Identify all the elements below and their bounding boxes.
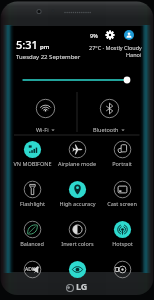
staticText: Airplane mode: [58, 160, 96, 167]
staticText: 5:31: [16, 37, 38, 52]
staticText: Flashlight: [20, 200, 45, 207]
button[interactable]: Cast screen: [100, 181, 144, 211]
staticText: 27°C · Mostly Cloudy: [89, 44, 142, 51]
button[interactable]: Portrait: [100, 141, 144, 171]
staticText: Bluetooth: [93, 126, 119, 133]
button[interactable]: Bluetooth: [77, 99, 141, 133]
button[interactable]: Quick setting: [10, 261, 54, 291]
button[interactable]: Wi-Fi: [13, 99, 77, 133]
staticText: Invert colors: [61, 240, 94, 247]
button[interactable]: Invert colors: [55, 221, 99, 251]
staticText: Hanoi: [126, 51, 142, 58]
button[interactable]: Airplane mode: [55, 141, 99, 171]
button[interactable]: Brightness: [18, 72, 136, 88]
button[interactable]: Quick setting: [100, 261, 144, 291]
button[interactable]: User profile: [124, 30, 134, 40]
staticText: High accuracy: [59, 200, 96, 207]
button[interactable]: Quick setting: [55, 261, 99, 291]
button[interactable]: Balanced: [10, 221, 54, 251]
button[interactable]: Hotspot: [100, 221, 144, 251]
staticText: Wi-Fi: [36, 126, 49, 133]
staticText: ADK: [25, 266, 35, 273]
staticText: Portrait: [112, 160, 132, 167]
staticText: Hotspot: [112, 240, 133, 247]
button[interactable]: Settings: [105, 30, 115, 40]
staticText: Balanced: [20, 240, 44, 247]
staticText: VN MOBIFONE: [13, 160, 52, 167]
button[interactable]: Flashlight: [10, 181, 54, 211]
staticText: LG: [76, 280, 88, 292]
staticText: Tuesday 22 September: [16, 53, 81, 61]
staticText: 9%: [90, 32, 98, 39]
staticText: Cast screen: [107, 200, 137, 207]
button[interactable]: High accuracy: [55, 181, 99, 211]
staticText: pm: [40, 43, 50, 51]
button[interactable]: VN MOBIFONE: [10, 141, 54, 171]
